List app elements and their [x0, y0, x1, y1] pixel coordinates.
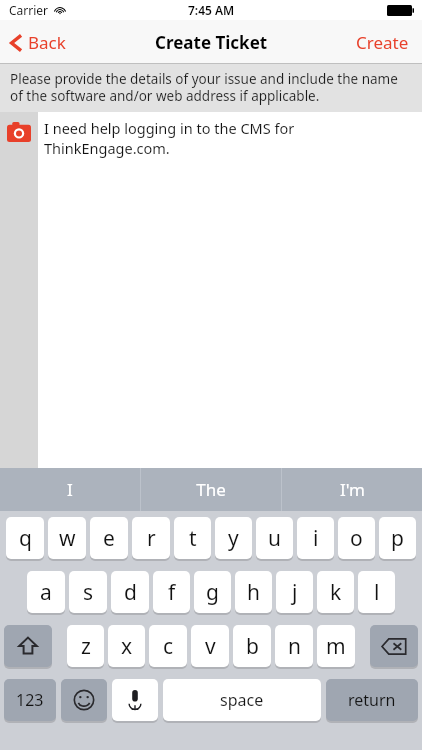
staticText: I'm	[340, 478, 365, 501]
button[interactable]: t	[174, 517, 211, 561]
button[interactable]: f	[153, 571, 190, 615]
staticText: v	[205, 632, 216, 661]
staticText: p	[391, 524, 404, 553]
button[interactable]: q	[6, 517, 44, 561]
button[interactable]: Dictate	[112, 679, 158, 723]
staticText: space	[220, 689, 264, 711]
button[interactable]: x	[108, 625, 145, 669]
staticText: Create	[356, 31, 409, 54]
button[interactable]: space	[163, 679, 321, 723]
button[interactable]: n	[275, 625, 313, 669]
staticText: e	[103, 524, 115, 553]
staticText: Please provide the details of your issue…	[10, 70, 412, 105]
staticText: z	[81, 632, 91, 661]
staticText: Carrier	[9, 2, 49, 18]
staticText: l	[374, 578, 380, 607]
staticText: m	[326, 632, 346, 661]
staticText: w	[59, 524, 76, 553]
button[interactable]: p	[379, 517, 416, 561]
staticText: o	[350, 524, 363, 553]
button[interactable]: v	[191, 625, 229, 669]
button[interactable]: r	[132, 517, 170, 561]
button[interactable]: I	[0, 468, 140, 511]
staticText: x	[121, 632, 133, 661]
staticText: i	[313, 524, 319, 553]
button[interactable]: 123	[4, 679, 56, 723]
staticText: The	[196, 478, 226, 501]
staticText: h	[247, 578, 260, 607]
staticText: u	[268, 524, 281, 553]
staticText: I need help logging in to the CMS for Th…	[44, 118, 422, 158]
button[interactable]: b	[233, 625, 271, 669]
staticText: g	[206, 578, 219, 607]
button[interactable]: g	[194, 571, 231, 615]
button[interactable]: Emoji	[61, 679, 107, 723]
button[interactable]: j	[276, 571, 313, 615]
button[interactable]: m	[317, 625, 355, 669]
button[interactable]: Attach photo	[5, 118, 33, 146]
staticText: return	[348, 689, 396, 711]
button[interactable]: d	[111, 571, 149, 615]
staticText: r	[147, 524, 156, 553]
button[interactable]: I'm	[282, 468, 422, 511]
staticText: k	[330, 578, 342, 607]
button[interactable]: y	[215, 517, 252, 561]
button[interactable]: z	[67, 625, 104, 669]
staticText: j	[292, 578, 298, 607]
button[interactable]: o	[338, 517, 375, 561]
button[interactable]: Shift	[4, 625, 52, 669]
button[interactable]: i	[297, 517, 334, 561]
staticText: n	[288, 632, 301, 661]
button[interactable]: return	[326, 679, 418, 723]
button[interactable]: c	[149, 625, 187, 669]
staticText: Back	[28, 31, 66, 54]
staticText: 7:45 AM	[188, 2, 235, 18]
staticText: y	[228, 524, 239, 553]
staticText: q	[19, 524, 32, 553]
staticText: d	[124, 578, 137, 607]
button[interactable]: e	[90, 517, 128, 561]
staticText: 123	[16, 689, 44, 711]
button[interactable]: Backspace	[370, 625, 418, 669]
button[interactable]: The	[141, 468, 281, 511]
button[interactable]: w	[48, 517, 86, 561]
button[interactable]: l	[358, 571, 395, 615]
staticText: c	[163, 632, 174, 661]
staticText: Create Ticket	[155, 31, 268, 54]
button[interactable]: a	[27, 571, 65, 615]
staticText: f	[168, 578, 176, 607]
staticText: s	[83, 578, 94, 607]
staticText: I	[67, 478, 73, 501]
button[interactable]: h	[235, 571, 272, 615]
button[interactable]: u	[256, 517, 293, 561]
button[interactable]: Back	[0, 25, 78, 60]
staticText: t	[189, 524, 197, 553]
staticText: a	[40, 578, 52, 607]
button[interactable]: s	[69, 571, 107, 615]
button[interactable]: Create	[343, 23, 422, 62]
button[interactable]: k	[317, 571, 354, 615]
staticText: b	[246, 632, 259, 661]
